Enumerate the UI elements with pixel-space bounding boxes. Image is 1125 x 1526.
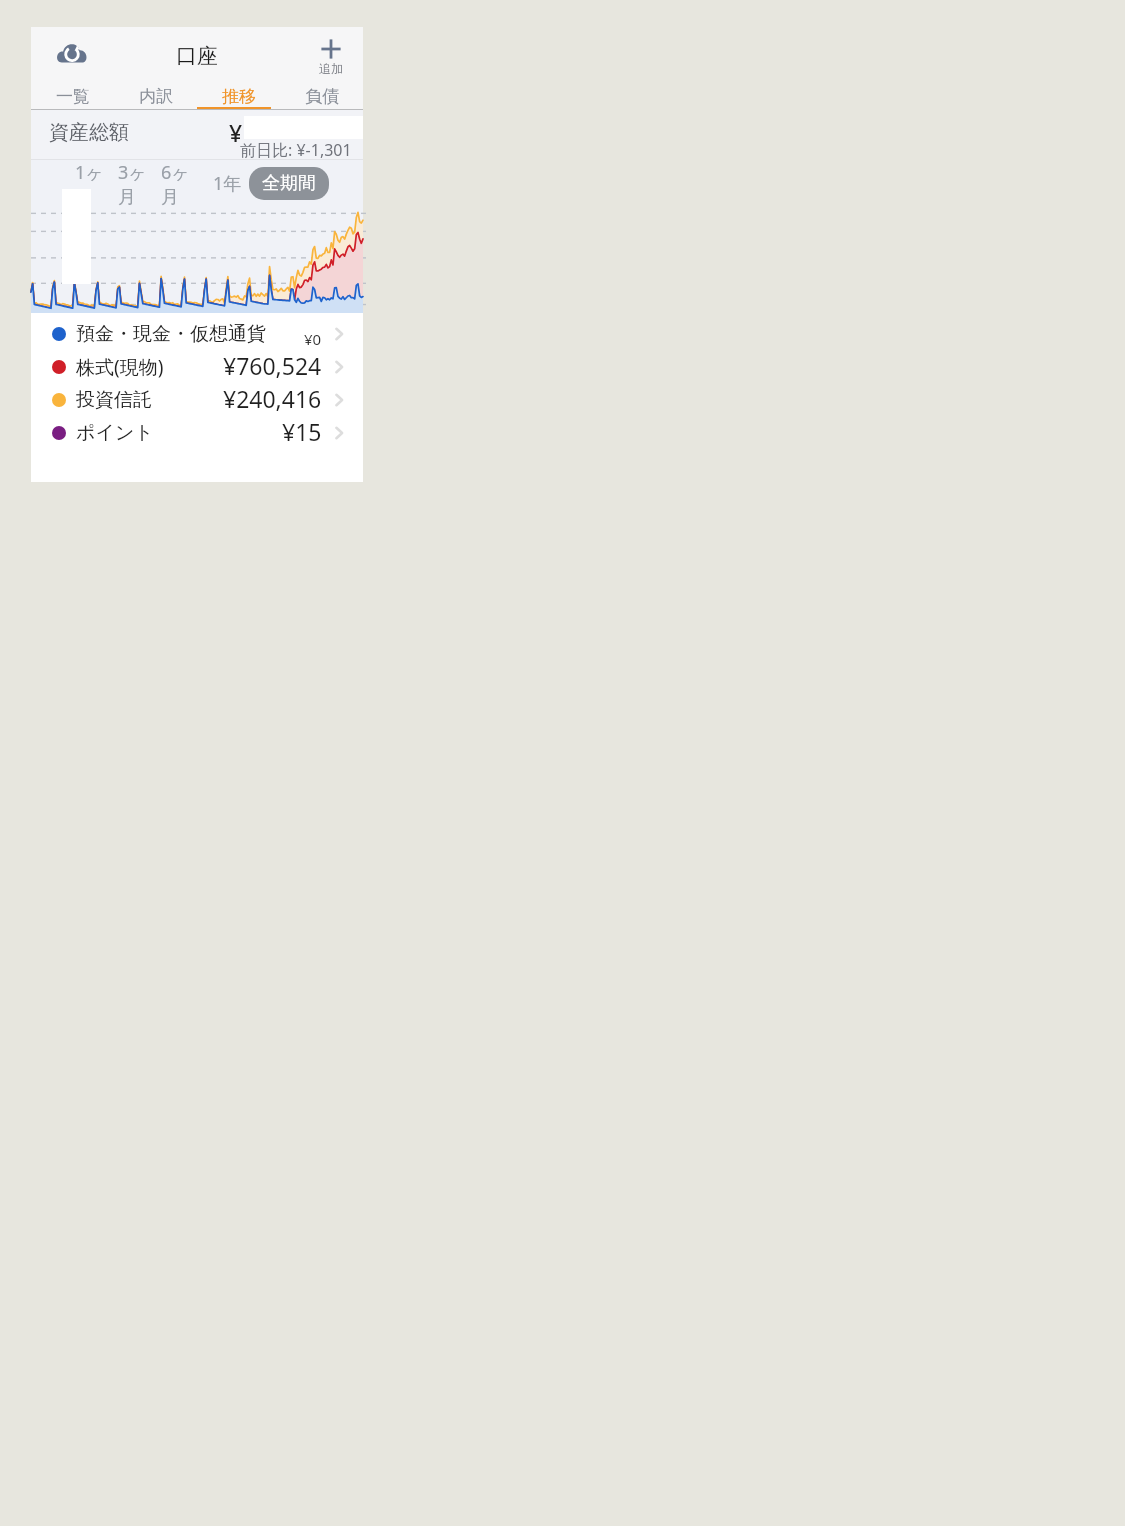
other: Open 投資信託 — [331, 390, 351, 410]
button[interactable]: 株式(現物) — [31, 350, 363, 383]
staticText: 推移 — [222, 86, 256, 107]
button[interactable]: 推移 — [197, 82, 280, 110]
staticText: ¥760,524 — [223, 350, 322, 381]
button[interactable]: 6ヶ月 — [161, 160, 205, 206]
staticText: 内訳 — [139, 86, 173, 107]
staticText: ¥240,416 — [223, 383, 322, 414]
button[interactable]: Sync — [49, 32, 95, 78]
staticText: 投資信託 — [76, 388, 152, 412]
button[interactable]: 預金・現金・仮想通貨 — [31, 317, 363, 350]
staticText: 資産総額 — [49, 120, 129, 145]
button[interactable]: ポイント — [31, 416, 363, 449]
other: Open 預金・現金・仮想通貨 — [331, 324, 351, 344]
staticText: 3ヶ月 — [118, 160, 161, 206]
button[interactable]: 投資信託 — [31, 383, 363, 416]
staticText: 預金・現金・仮想通貨 — [76, 322, 266, 346]
staticText: ¥0 — [304, 329, 322, 349]
button[interactable]: 3ヶ月 — [118, 160, 161, 206]
staticText: 1年 — [213, 171, 242, 196]
button[interactable]: 内訳 — [114, 82, 197, 110]
button[interactable]: 1年 — [205, 171, 249, 196]
button[interactable]: 負債 — [280, 82, 363, 110]
staticText: 6ヶ月 — [161, 160, 205, 206]
staticText: 追加 — [319, 61, 343, 76]
staticText: 全期間 — [262, 172, 316, 195]
staticText: 一覧 — [56, 86, 90, 107]
staticText: 1ヶ月 — [75, 160, 118, 206]
button[interactable]: 追加 — [313, 37, 349, 76]
staticText: 株式(現物) — [76, 354, 164, 380]
staticText: 前日比: ¥-1,301 — [240, 139, 352, 161]
staticText: ¥15 — [282, 416, 322, 447]
other: Open ポイント — [331, 423, 351, 443]
staticText: ¥ — [229, 117, 243, 148]
button[interactable]: 一覧 — [31, 82, 114, 110]
button[interactable]: 全期間 — [249, 167, 329, 200]
staticText: 口座 — [176, 43, 218, 69]
staticText: ポイント — [76, 421, 154, 445]
other: Open 株式(現物) — [331, 357, 351, 377]
staticText: 負債 — [305, 86, 339, 107]
button[interactable]: 1ヶ月 — [75, 160, 118, 206]
